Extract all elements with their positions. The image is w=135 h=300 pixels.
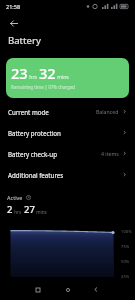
staticText: Battery xyxy=(8,34,41,47)
staticText: Current mode xyxy=(8,108,49,116)
staticText: 27 xyxy=(24,203,35,216)
button[interactable]: Back xyxy=(3,15,25,31)
staticText: Active xyxy=(7,194,23,201)
staticText: Battery protection xyxy=(8,129,61,137)
staticText: Battery check-up xyxy=(8,150,57,158)
staticText: 21:58 xyxy=(6,3,21,10)
button[interactable]: Battery protection xyxy=(0,122,135,143)
staticText: mins xyxy=(35,209,47,215)
button[interactable]: Current mode xyxy=(0,101,135,122)
staticText: 23 xyxy=(11,63,28,83)
staticText: Additional features xyxy=(8,171,64,179)
button[interactable]: Additional features xyxy=(0,164,135,185)
staticText: 2 xyxy=(7,203,13,216)
staticText: Remaining time | 97% charged xyxy=(11,84,76,90)
button[interactable]: Back xyxy=(87,281,104,298)
button[interactable]: Recents xyxy=(29,281,46,298)
staticText: mins xyxy=(56,74,69,81)
button[interactable]: Home xyxy=(59,281,76,298)
staticText: Balanced xyxy=(96,108,119,115)
staticText: 50% xyxy=(121,259,130,265)
button[interactable]: 23 xyxy=(6,58,129,98)
staticText: 75% xyxy=(121,244,130,250)
staticText: 32 xyxy=(39,63,56,83)
staticText: 25% xyxy=(121,274,130,280)
button[interactable]: Battery check-up xyxy=(0,143,135,164)
staticText: 100% xyxy=(121,229,132,235)
staticText: hrs xyxy=(13,209,22,215)
staticText: 4 items xyxy=(101,150,119,157)
staticText: hrs xyxy=(28,74,37,81)
